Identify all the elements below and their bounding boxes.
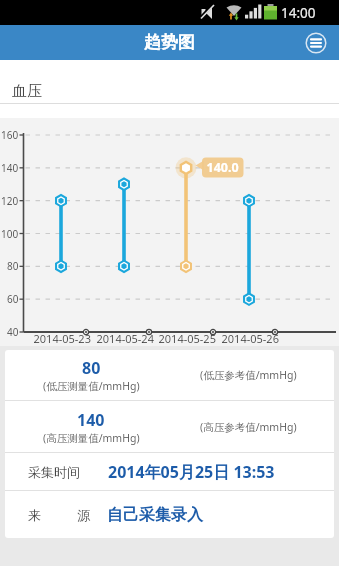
staticText: 80 xyxy=(82,357,101,379)
staticText: 趋势图 xyxy=(144,32,195,53)
staticText: (低压参考值/mmHg) xyxy=(200,368,297,382)
staticText: (高压测量值/mmHg) xyxy=(43,431,140,445)
staticText: 血压 xyxy=(12,82,42,101)
staticText: (高压参考值/mmHg) xyxy=(200,420,297,434)
staticText: 140 xyxy=(77,409,105,431)
button[interactable] xyxy=(304,31,328,55)
button[interactable]: 80 xyxy=(5,350,334,400)
button[interactable]: 采集时间 xyxy=(5,453,334,490)
staticText: 采集时间 xyxy=(28,464,80,480)
button[interactable]: 来 xyxy=(5,491,334,538)
button[interactable]: 140 xyxy=(5,401,334,452)
staticText: 自己采集录入 xyxy=(107,505,203,525)
staticText: 源 xyxy=(77,507,90,523)
staticText: 2014年05月25日 13:53 xyxy=(108,461,275,483)
staticText: (低压测量值/mmHg) xyxy=(43,379,140,393)
staticText: 来 xyxy=(28,507,41,523)
